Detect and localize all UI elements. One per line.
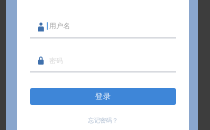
button[interactable]: 用户名 [30, 17, 176, 38]
button[interactable]: 登录 [30, 88, 176, 105]
staticText: 用户名 [49, 22, 70, 30]
staticText: 密码 [49, 57, 63, 65]
staticText: 登录 [95, 92, 111, 101]
button[interactable]: 密码 [30, 51, 176, 72]
staticText: 忘记密码？ [88, 117, 118, 124]
button[interactable]: 忘记密码？ [30, 116, 176, 125]
